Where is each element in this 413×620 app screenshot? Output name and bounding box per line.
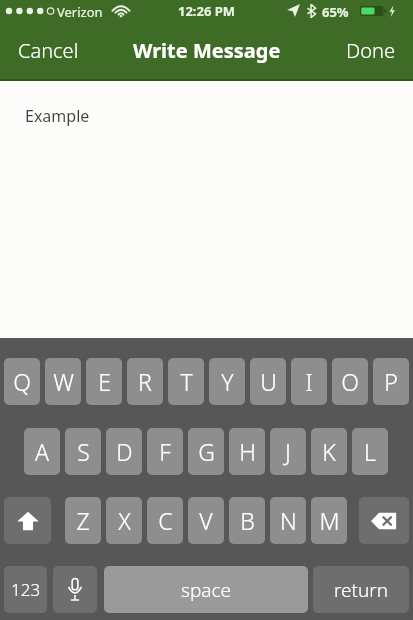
button[interactable]: 123	[4, 566, 47, 613]
staticText: H	[239, 436, 256, 467]
button[interactable]: Shift	[4, 497, 51, 544]
button[interactable]: D	[106, 428, 142, 475]
staticText: F	[159, 436, 171, 467]
staticText: D	[116, 436, 133, 467]
button[interactable]: M	[311, 497, 347, 544]
button[interactable]: Backspace	[359, 497, 409, 544]
staticText: Cancel	[18, 37, 79, 64]
staticText: space	[181, 577, 231, 603]
staticText: E	[98, 366, 111, 397]
button[interactable]: T	[168, 358, 204, 405]
button[interactable]: J	[270, 428, 306, 475]
staticText: T	[180, 366, 193, 397]
button[interactable]: P	[373, 358, 409, 405]
staticText: G	[198, 436, 215, 467]
button[interactable]: L	[352, 428, 388, 475]
button[interactable]: R	[127, 358, 163, 405]
staticText: Write Message	[133, 37, 281, 64]
button[interactable]: Y	[209, 358, 245, 405]
button[interactable]: return	[313, 566, 409, 613]
button[interactable]: Z	[65, 497, 101, 544]
button[interactable]: Cancel	[6, 28, 91, 73]
staticText: X	[118, 505, 131, 536]
staticText: O	[341, 366, 359, 397]
staticText: N	[280, 505, 297, 536]
button[interactable]: H	[229, 428, 265, 475]
staticText: 123	[11, 578, 41, 601]
button[interactable]: C	[147, 497, 183, 544]
staticText: 65%	[322, 3, 349, 21]
button[interactable]: Done	[334, 28, 407, 73]
staticText: 12:26 PM	[178, 2, 236, 20]
button[interactable]: U	[250, 358, 286, 405]
staticText: S	[77, 436, 90, 467]
staticText: V	[199, 505, 213, 536]
staticText: U	[260, 366, 277, 397]
button[interactable]: O	[332, 358, 368, 405]
staticText: return	[334, 577, 389, 603]
staticText: M	[319, 505, 340, 536]
staticText: J	[285, 436, 291, 467]
button[interactable]: S	[65, 428, 101, 475]
button[interactable]: F	[147, 428, 183, 475]
staticText: Y	[221, 366, 234, 397]
button[interactable]: Dictate	[53, 566, 97, 613]
staticText: K	[322, 436, 336, 467]
button[interactable]: space	[104, 566, 308, 613]
button[interactable]: E	[86, 358, 122, 405]
button[interactable]: Q	[4, 358, 40, 405]
button[interactable]: N	[270, 497, 306, 544]
button[interactable]: I	[291, 358, 327, 405]
staticText: R	[138, 366, 152, 397]
staticText: Z	[76, 505, 90, 536]
staticText: Example	[25, 105, 90, 127]
staticText: A	[35, 436, 49, 467]
staticText: Verizon	[57, 3, 103, 21]
staticText: P	[384, 366, 398, 397]
staticText: B	[240, 505, 255, 536]
button[interactable]: X	[106, 497, 142, 544]
button[interactable]: B	[229, 497, 265, 544]
staticText: I	[305, 366, 313, 397]
staticText: Done	[346, 37, 395, 64]
staticText: Q	[13, 366, 31, 397]
button[interactable]: Example	[0, 81, 413, 338]
staticText: C	[158, 505, 173, 536]
button[interactable]: A	[24, 428, 60, 475]
staticText: L	[364, 436, 376, 467]
button[interactable]: V	[188, 497, 224, 544]
button[interactable]: K	[311, 428, 347, 475]
staticText: W	[53, 366, 74, 397]
button[interactable]: W	[45, 358, 81, 405]
button[interactable]: G	[188, 428, 224, 475]
